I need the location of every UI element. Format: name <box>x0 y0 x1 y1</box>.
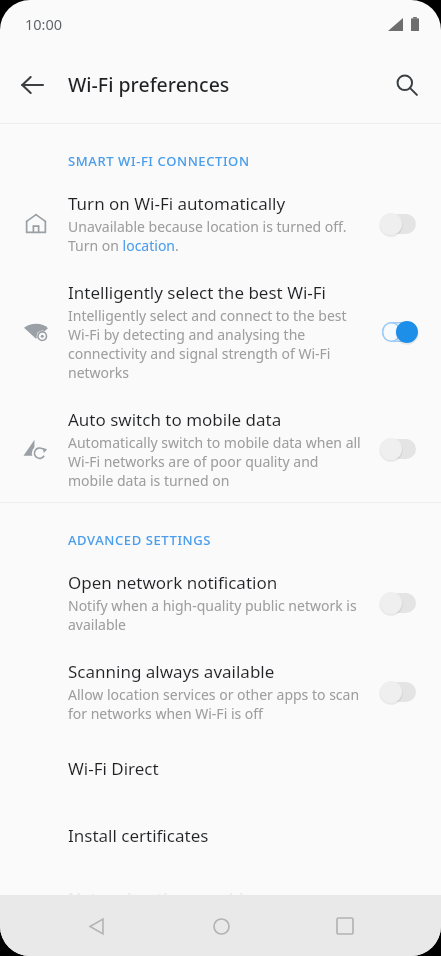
staticText: Unavailable because location is turned o… <box>68 217 347 255</box>
button[interactable]: Search <box>383 61 431 109</box>
staticText: Turn on Wi-Fi automatically <box>68 192 286 215</box>
button[interactable]: Back <box>8 61 56 109</box>
staticText: Notify when a high-quality public networ… <box>68 596 363 634</box>
staticText: Auto switch to mobile data <box>68 408 282 431</box>
button[interactable]: Toggle off <box>373 207 425 241</box>
button[interactable]: Intelligently select the best Wi-Fi <box>0 267 441 394</box>
staticText: Wi-Fi Direct <box>68 757 159 780</box>
button[interactable]: Network rating provider <box>0 869 441 910</box>
staticText: Allow location services or other apps to… <box>68 685 363 723</box>
button[interactable]: Toggle off <box>373 675 425 709</box>
button[interactable]: Wi-Fi Direct <box>0 735 441 802</box>
staticText: Install certificates <box>68 824 209 847</box>
button[interactable]: Install certificates <box>0 802 441 869</box>
button[interactable]: Scanning always available <box>0 646 441 735</box>
button[interactable]: Toggle off <box>373 586 425 620</box>
button[interactable]: Auto switch to mobile data <box>0 394 441 502</box>
staticText: Scanning always available <box>68 660 275 683</box>
button[interactable]: Back <box>68 898 124 954</box>
button[interactable]: Toggle off <box>373 432 425 466</box>
button[interactable]: Home <box>193 898 249 954</box>
staticText: Wi-Fi preferences <box>68 71 230 98</box>
button[interactable]: Recent apps <box>317 898 373 954</box>
button[interactable]: Turn on Wi-Fi automatically <box>0 178 441 267</box>
staticText: Automatically switch to mobile data when… <box>68 433 363 490</box>
staticText: SMART WI-FI CONNECTION <box>68 152 250 170</box>
staticText: Intelligently select the best Wi-Fi <box>68 281 327 304</box>
staticText: 10:00 <box>25 14 63 34</box>
button[interactable]: Toggle on <box>373 315 425 349</box>
button[interactable]: Open network notification <box>0 557 441 646</box>
staticText: Network rating provider <box>68 887 261 910</box>
staticText: Open network notification <box>68 571 278 594</box>
staticText: Intelligently select and connect to the … <box>68 306 363 382</box>
staticText: ADVANCED SETTINGS <box>68 531 212 549</box>
